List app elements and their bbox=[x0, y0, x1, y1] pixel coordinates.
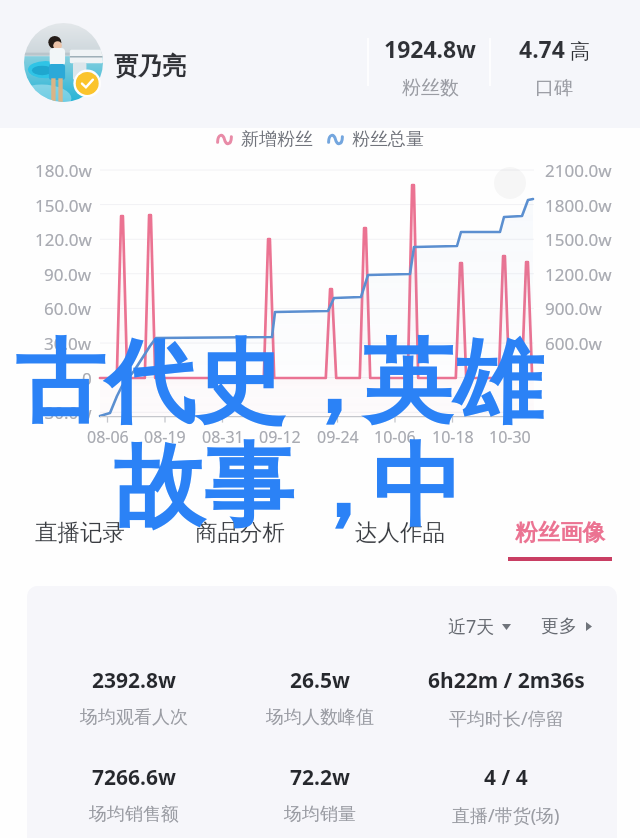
button[interactable]: 6h22m / 2m36s bbox=[413, 666, 599, 731]
button[interactable]: 商品分析 bbox=[160, 508, 320, 568]
staticText: 1200.0w bbox=[545, 263, 612, 286]
staticText: 08-31 bbox=[202, 426, 244, 448]
staticText: 中 bbox=[372, 430, 462, 543]
staticText: 粉丝数 bbox=[402, 76, 459, 100]
staticText: 直播/带货(场) bbox=[452, 803, 560, 828]
staticText: 08-06 bbox=[87, 426, 129, 448]
staticText: 古代史 bbox=[15, 326, 285, 439]
staticText: 2392.8w bbox=[92, 666, 176, 695]
staticText: 09-24 bbox=[317, 426, 359, 448]
staticText: 近7天 bbox=[448, 614, 495, 639]
staticText: 1924.8w bbox=[384, 33, 476, 64]
staticText: -30.0w bbox=[39, 401, 92, 424]
staticText: 新增粉丝 bbox=[241, 128, 313, 151]
staticText: 1800.0w bbox=[545, 194, 612, 217]
staticText: 6h22m / 2m36s bbox=[428, 666, 585, 695]
button[interactable]: 4 / 4 bbox=[413, 763, 599, 828]
staticText: 更多 bbox=[541, 615, 577, 638]
button[interactable]: 近7天 bbox=[444, 610, 515, 643]
staticText: 600.0w bbox=[545, 332, 602, 355]
button[interactable]: 72.2w bbox=[227, 763, 413, 826]
staticText: 英雄 bbox=[363, 326, 543, 439]
staticText: 26.5w bbox=[290, 666, 350, 695]
staticText: ， bbox=[287, 326, 365, 439]
staticText: 贾乃亮 bbox=[114, 51, 186, 81]
button[interactable]: 7266.6w bbox=[41, 763, 227, 826]
staticText: 90.0w bbox=[44, 263, 92, 286]
staticText: 场均销售额 bbox=[89, 803, 179, 826]
staticText: 120.0w bbox=[35, 228, 92, 251]
staticText: 口碑 bbox=[535, 76, 573, 100]
staticText: 10-06 bbox=[374, 426, 416, 448]
staticText: 180.0w bbox=[35, 159, 92, 182]
staticText: 平均时长/停留 bbox=[449, 706, 564, 731]
staticText: 场均观看人次 bbox=[80, 706, 188, 729]
staticText: 7266.6w bbox=[92, 763, 176, 792]
button[interactable]: 2392.8w bbox=[41, 666, 227, 729]
staticText: 4.74 bbox=[519, 33, 565, 64]
staticText: 场均销量 bbox=[284, 803, 356, 826]
staticText: 10-18 bbox=[432, 426, 474, 448]
button[interactable]: 26.5w bbox=[227, 666, 413, 729]
staticText: 2100.0w bbox=[545, 159, 612, 182]
staticText: 0 bbox=[82, 367, 92, 390]
staticText: 60.0w bbox=[44, 297, 92, 320]
staticText: ， bbox=[296, 430, 374, 543]
staticText: 30.0w bbox=[44, 332, 92, 355]
button[interactable]: 1924.8w bbox=[368, 33, 492, 100]
button[interactable]: 粉丝画像 bbox=[480, 508, 640, 568]
staticText: 09-12 bbox=[259, 426, 301, 448]
staticText: 150.0w bbox=[35, 194, 92, 217]
button[interactable]: 更多 bbox=[537, 611, 596, 642]
button[interactable]: Profile avatar bbox=[24, 23, 103, 102]
button[interactable]: 4.74 bbox=[492, 33, 616, 100]
button[interactable]: 达人作品 bbox=[320, 508, 480, 568]
staticText: 1500.0w bbox=[545, 228, 612, 251]
button[interactable]: 直播记录 bbox=[0, 508, 160, 568]
staticText: 4 / 4 bbox=[484, 763, 528, 792]
staticText: 10-30 bbox=[489, 426, 531, 448]
staticText: 故事 bbox=[114, 430, 294, 543]
staticText: 粉丝画像 bbox=[515, 518, 605, 546]
staticText: 商品分析 bbox=[195, 518, 285, 546]
staticText: 08-19 bbox=[144, 426, 186, 448]
staticText: 场均人数峰值 bbox=[266, 706, 374, 729]
staticText: 高 bbox=[570, 39, 590, 64]
staticText: 直播记录 bbox=[35, 518, 125, 546]
staticText: 达人作品 bbox=[355, 518, 445, 546]
staticText: 900.0w bbox=[545, 297, 602, 320]
staticText: 粉丝总量 bbox=[352, 128, 424, 151]
staticText: 72.2w bbox=[290, 763, 350, 792]
